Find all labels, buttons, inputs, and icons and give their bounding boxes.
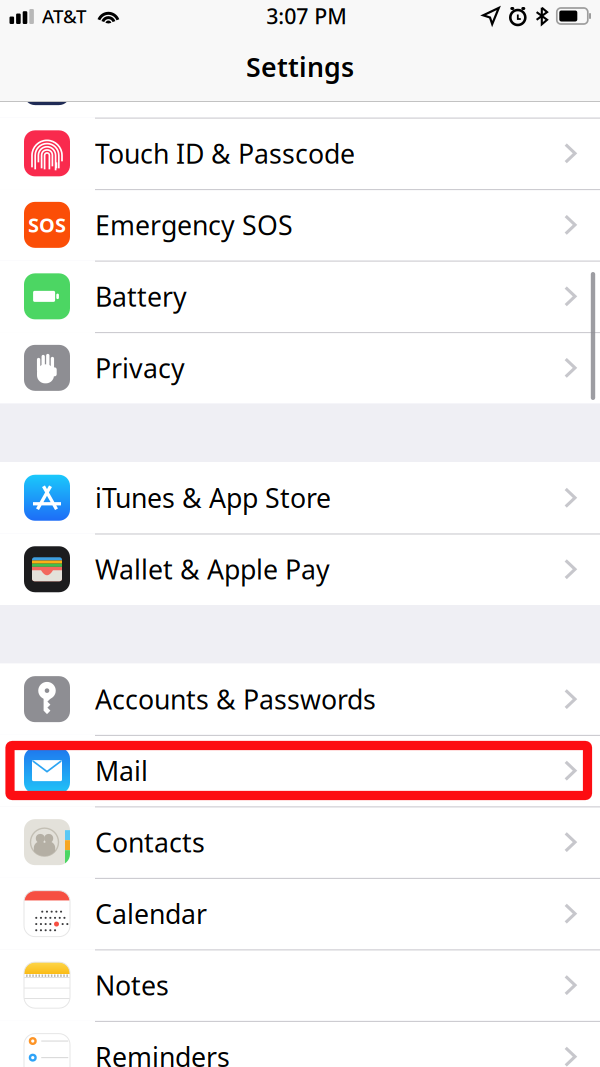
button[interactable]: Accounts & Passwords xyxy=(0,663,600,735)
staticText: Notes xyxy=(95,967,169,1003)
button[interactable]: Reminders xyxy=(0,1021,600,1067)
button[interactable]: Battery xyxy=(0,261,600,332)
button[interactable]: Mail xyxy=(0,735,600,806)
button[interactable]: SOS xyxy=(0,189,600,261)
staticText: Emergency SOS xyxy=(95,207,293,242)
staticText: Wallet & Apple Pay xyxy=(95,551,330,587)
staticText: iTunes & App Store xyxy=(95,480,331,515)
staticText: Accounts & Passwords xyxy=(95,681,376,717)
staticText: Privacy xyxy=(95,350,185,385)
staticText: Settings xyxy=(246,49,354,84)
staticText: Calendar xyxy=(95,896,207,931)
staticText: AT&T xyxy=(42,4,86,28)
staticText: Battery xyxy=(95,279,187,314)
staticText: Mail xyxy=(95,753,148,788)
staticText: 3:07 PM xyxy=(266,2,347,30)
button[interactable]: Notes xyxy=(0,949,600,1021)
button[interactable]: iTunes & App Store xyxy=(0,462,600,533)
button[interactable]: Wallet & Apple Pay xyxy=(0,533,600,605)
button[interactable]: Contacts xyxy=(0,806,600,878)
staticText: Touch ID & Passcode xyxy=(95,136,355,171)
button[interactable]: Privacy xyxy=(0,332,600,404)
staticText: Reminders xyxy=(95,1039,230,1067)
staticText: Contacts xyxy=(95,824,205,860)
button[interactable]: Calendar xyxy=(0,878,600,949)
staticText: SOS xyxy=(28,212,66,238)
button[interactable]: Touch ID & Passcode xyxy=(0,118,600,189)
